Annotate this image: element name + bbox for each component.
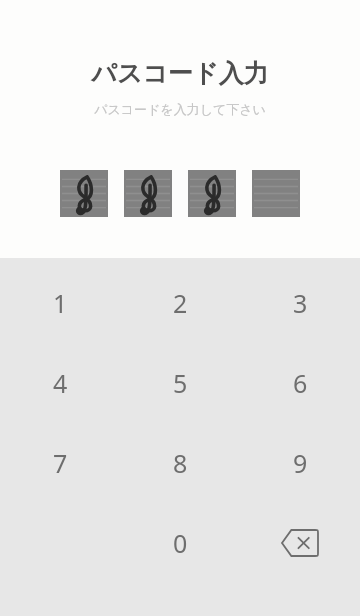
button[interactable]: 7 (0, 423, 120, 503)
staticText: 4 (53, 366, 68, 400)
staticText: 8 (173, 446, 188, 480)
button[interactable] (60, 170, 108, 217)
button[interactable]: 8 (120, 423, 240, 503)
staticText: 2 (173, 286, 188, 320)
staticText: 3 (293, 286, 308, 320)
button[interactable]: 5 (120, 343, 240, 423)
button[interactable]: 3 (240, 263, 360, 343)
button[interactable]: 6 (240, 343, 360, 423)
staticText: 6 (293, 366, 308, 400)
staticText: 1 (53, 286, 68, 320)
button[interactable]: 0 (120, 503, 240, 583)
button[interactable] (252, 170, 300, 217)
staticText: 9 (293, 446, 308, 480)
staticText: 5 (173, 366, 188, 400)
button[interactable]: 4 (0, 343, 120, 423)
button[interactable] (124, 170, 172, 217)
staticText: 0 (173, 526, 188, 560)
staticText: パスコードを入力して下さい (94, 101, 266, 117)
button[interactable]: 9 (240, 423, 360, 503)
button[interactable]: 2 (120, 263, 240, 343)
staticText: 7 (53, 446, 68, 480)
button[interactable] (188, 170, 236, 217)
button[interactable]: Backspace (240, 503, 360, 583)
button[interactable]: 1 (0, 263, 120, 343)
staticText: パスコード入力 (91, 58, 269, 89)
